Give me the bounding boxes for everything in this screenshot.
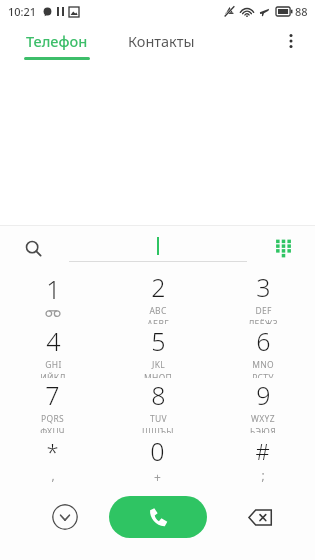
- staticText: 7: [45, 378, 60, 412]
- button[interactable]: Hide keypad: [267, 232, 299, 264]
- button[interactable]: Backspace: [243, 500, 277, 534]
- staticText: АБВГ: [147, 318, 169, 324]
- staticText: 8: [151, 378, 166, 412]
- staticText: 2: [151, 270, 166, 304]
- staticText: ФХЦЧ: [40, 426, 65, 433]
- staticText: 3: [256, 270, 271, 304]
- staticText: MNO: [252, 359, 274, 371]
- button[interactable]: 7: [0, 378, 105, 433]
- staticText: ;: [261, 467, 265, 483]
- staticText: 10:21: [8, 4, 37, 19]
- button[interactable]: 8: [105, 378, 210, 433]
- staticText: 1: [46, 272, 61, 306]
- staticText: 9: [256, 378, 271, 412]
- staticText: 5: [151, 324, 166, 358]
- button[interactable]: 5: [105, 324, 210, 378]
- staticText: 4: [46, 324, 61, 358]
- staticText: GHI: [45, 359, 62, 371]
- staticText: 88: [295, 4, 308, 19]
- button[interactable]: 2: [105, 270, 210, 324]
- button[interactable]: 9: [210, 378, 315, 433]
- staticText: ABC: [149, 305, 167, 317]
- staticText: WXYZ: [251, 413, 275, 425]
- staticText: ЬЭЮЯ: [250, 426, 276, 433]
- staticText: ,: [51, 467, 55, 483]
- button[interactable]: More options: [275, 25, 307, 57]
- button[interactable]: 6: [210, 324, 315, 378]
- button[interactable]: Search: [18, 233, 48, 263]
- staticText: 6: [256, 324, 271, 358]
- button[interactable]: 4: [0, 324, 105, 378]
- button[interactable]: 0: [105, 433, 210, 488]
- button[interactable]: Телефон: [24, 25, 90, 57]
- button[interactable]: Expand: [52, 504, 78, 530]
- staticText: Контакты: [128, 31, 195, 51]
- button[interactable]: Контакты: [126, 25, 197, 57]
- staticText: ШЩЪЫ: [142, 426, 174, 433]
- button[interactable]: Call: [109, 496, 207, 538]
- staticText: PQRS: [41, 413, 64, 425]
- staticText: TUV: [150, 413, 167, 425]
- staticText: РСТУ: [252, 372, 274, 378]
- staticText: ИЙКЛ: [40, 372, 66, 378]
- staticText: *: [46, 436, 59, 466]
- staticText: +: [154, 469, 161, 485]
- staticText: #: [255, 436, 270, 466]
- button[interactable]: *: [0, 433, 105, 488]
- staticText: DEF: [255, 305, 272, 317]
- staticText: МНОП: [144, 372, 172, 378]
- staticText: Телефон: [26, 31, 88, 51]
- staticText: JKL: [152, 359, 165, 371]
- staticText: ДЕЁЖЗ: [248, 318, 278, 324]
- button[interactable]: 1: [0, 270, 105, 324]
- button[interactable]: 3: [210, 270, 315, 324]
- staticText: 0: [150, 434, 165, 468]
- button[interactable]: #: [210, 433, 315, 488]
